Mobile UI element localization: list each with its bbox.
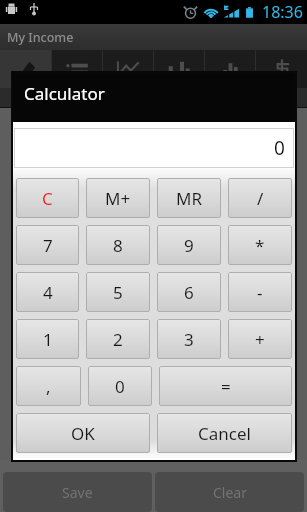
staticText: 0 bbox=[115, 375, 125, 398]
staticText: 0 bbox=[274, 135, 285, 161]
staticText: 2 bbox=[113, 328, 123, 351]
button[interactable]: + bbox=[228, 319, 292, 359]
button[interactable]: MR bbox=[157, 178, 221, 218]
button[interactable]: Report bbox=[154, 50, 204, 88]
button[interactable]: M+ bbox=[86, 178, 150, 218]
staticText: 1 bbox=[43, 328, 53, 351]
button[interactable]: = bbox=[159, 366, 292, 406]
staticText: MR bbox=[176, 187, 202, 210]
button[interactable]: Graph bbox=[103, 50, 153, 88]
staticText: 7 bbox=[43, 234, 53, 257]
button[interactable]: - bbox=[228, 272, 292, 312]
button[interactable]: Entry bbox=[0, 50, 51, 88]
staticText: 5 bbox=[113, 281, 123, 304]
button[interactable]: 9 bbox=[157, 225, 221, 265]
staticText: / bbox=[257, 187, 264, 210]
button[interactable]: * bbox=[228, 225, 292, 265]
button[interactable]: Save bbox=[3, 472, 152, 512]
button[interactable]: Clear bbox=[155, 472, 304, 512]
staticText: Clear bbox=[213, 483, 247, 502]
button[interactable]: 2 bbox=[86, 319, 150, 359]
button[interactable]: 8 bbox=[86, 225, 150, 265]
button[interactable]: C bbox=[16, 178, 79, 218]
staticText: 18:36 bbox=[262, 1, 303, 23]
button[interactable]: 1 bbox=[16, 319, 79, 359]
button[interactable]: 7 bbox=[16, 225, 79, 265]
button[interactable]: OK bbox=[16, 413, 150, 453]
button[interactable]: , bbox=[16, 366, 81, 406]
staticText: 6 bbox=[184, 281, 194, 304]
staticText: + bbox=[255, 328, 265, 351]
staticText: Cancel bbox=[198, 422, 251, 445]
staticText: 4 bbox=[43, 281, 53, 304]
button[interactable]: Cancel bbox=[157, 413, 292, 453]
staticText: 9 bbox=[184, 234, 194, 257]
button[interactable]: List bbox=[52, 50, 102, 88]
staticText: * bbox=[255, 234, 265, 257]
staticText: , bbox=[46, 375, 51, 398]
staticText: - bbox=[257, 281, 263, 304]
button[interactable]: 4 bbox=[16, 272, 79, 312]
button[interactable]: Totals bbox=[256, 50, 307, 88]
button[interactable]: 0 bbox=[88, 366, 152, 406]
staticText: 3 bbox=[184, 328, 194, 351]
staticText: Save bbox=[62, 483, 93, 502]
button[interactable]: / bbox=[228, 178, 292, 218]
staticText: OK bbox=[71, 422, 95, 445]
staticText: 8 bbox=[113, 234, 123, 257]
button[interactable]: 5 bbox=[86, 272, 150, 312]
staticText: C bbox=[42, 187, 53, 210]
button[interactable]: 6 bbox=[157, 272, 221, 312]
staticText: = bbox=[221, 375, 231, 398]
staticText: My Income bbox=[7, 29, 74, 46]
staticText: M+ bbox=[105, 187, 131, 210]
button[interactable]: Stats bbox=[205, 50, 255, 88]
button[interactable]: 3 bbox=[157, 319, 221, 359]
staticText: Calculator bbox=[24, 82, 105, 105]
